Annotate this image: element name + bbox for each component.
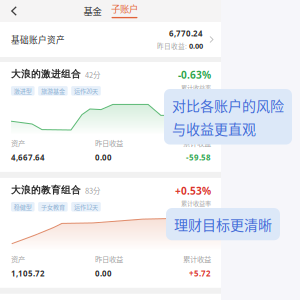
- staticText: 运作20天: [74, 86, 98, 95]
- button[interactable]: 基础账户资产: [0, 22, 221, 57]
- staticText: 0.00: [95, 152, 112, 163]
- staticText: 大浪的激进组合: [11, 68, 81, 80]
- staticText: 资产: [11, 138, 25, 148]
- staticText: 子女教育: [41, 202, 65, 211]
- staticText: 0.00: [95, 268, 112, 279]
- staticText: +0.53%: [175, 184, 211, 198]
- button[interactable]: Back: [0, 0, 28, 22]
- staticText: 资产: [11, 253, 25, 264]
- staticText: 昨日收益: [95, 253, 123, 264]
- staticText: 激进型: [14, 86, 32, 95]
- staticText: 大浪的教育组合: [11, 184, 81, 196]
- staticText: 4,667.64: [11, 152, 45, 163]
- staticText: 83分: [85, 185, 100, 196]
- staticText: 昨日收益: [95, 138, 123, 148]
- staticText: 累计收益率: [181, 199, 211, 208]
- staticText: -59.58: [186, 152, 211, 163]
- staticText: 运作12天: [74, 202, 98, 211]
- button[interactable]: 大浪的激进组合: [0, 62, 221, 172]
- staticText: 子账户: [111, 2, 138, 15]
- staticText: 基础账户资产: [11, 33, 65, 46]
- staticText: 累计收益: [183, 253, 211, 264]
- staticText: 6,770.24: [169, 28, 203, 39]
- staticText: +5.72: [189, 268, 211, 279]
- staticText: 0.00: [189, 41, 203, 51]
- staticText: 与收益更直观: [172, 118, 256, 139]
- button[interactable]: 子账户: [106, 0, 142, 22]
- staticText: 累计收益: [183, 138, 211, 148]
- staticText: 基金: [83, 4, 101, 18]
- staticText: 累计收益率: [181, 83, 211, 92]
- staticText: 旅游基金: [41, 86, 65, 95]
- button[interactable]: 基金: [78, 0, 106, 22]
- staticText: 稳健型: [14, 202, 32, 211]
- staticText: 1,105.72: [11, 268, 45, 279]
- button[interactable]: 大浪的教育组合: [0, 178, 221, 288]
- staticText: 对比各账户的风险: [172, 95, 284, 115]
- staticText: 昨日收益:: [157, 41, 187, 51]
- staticText: 42分: [85, 69, 100, 80]
- staticText: -0.63%: [178, 68, 211, 82]
- staticText: 理财目标更清晰: [174, 214, 272, 234]
